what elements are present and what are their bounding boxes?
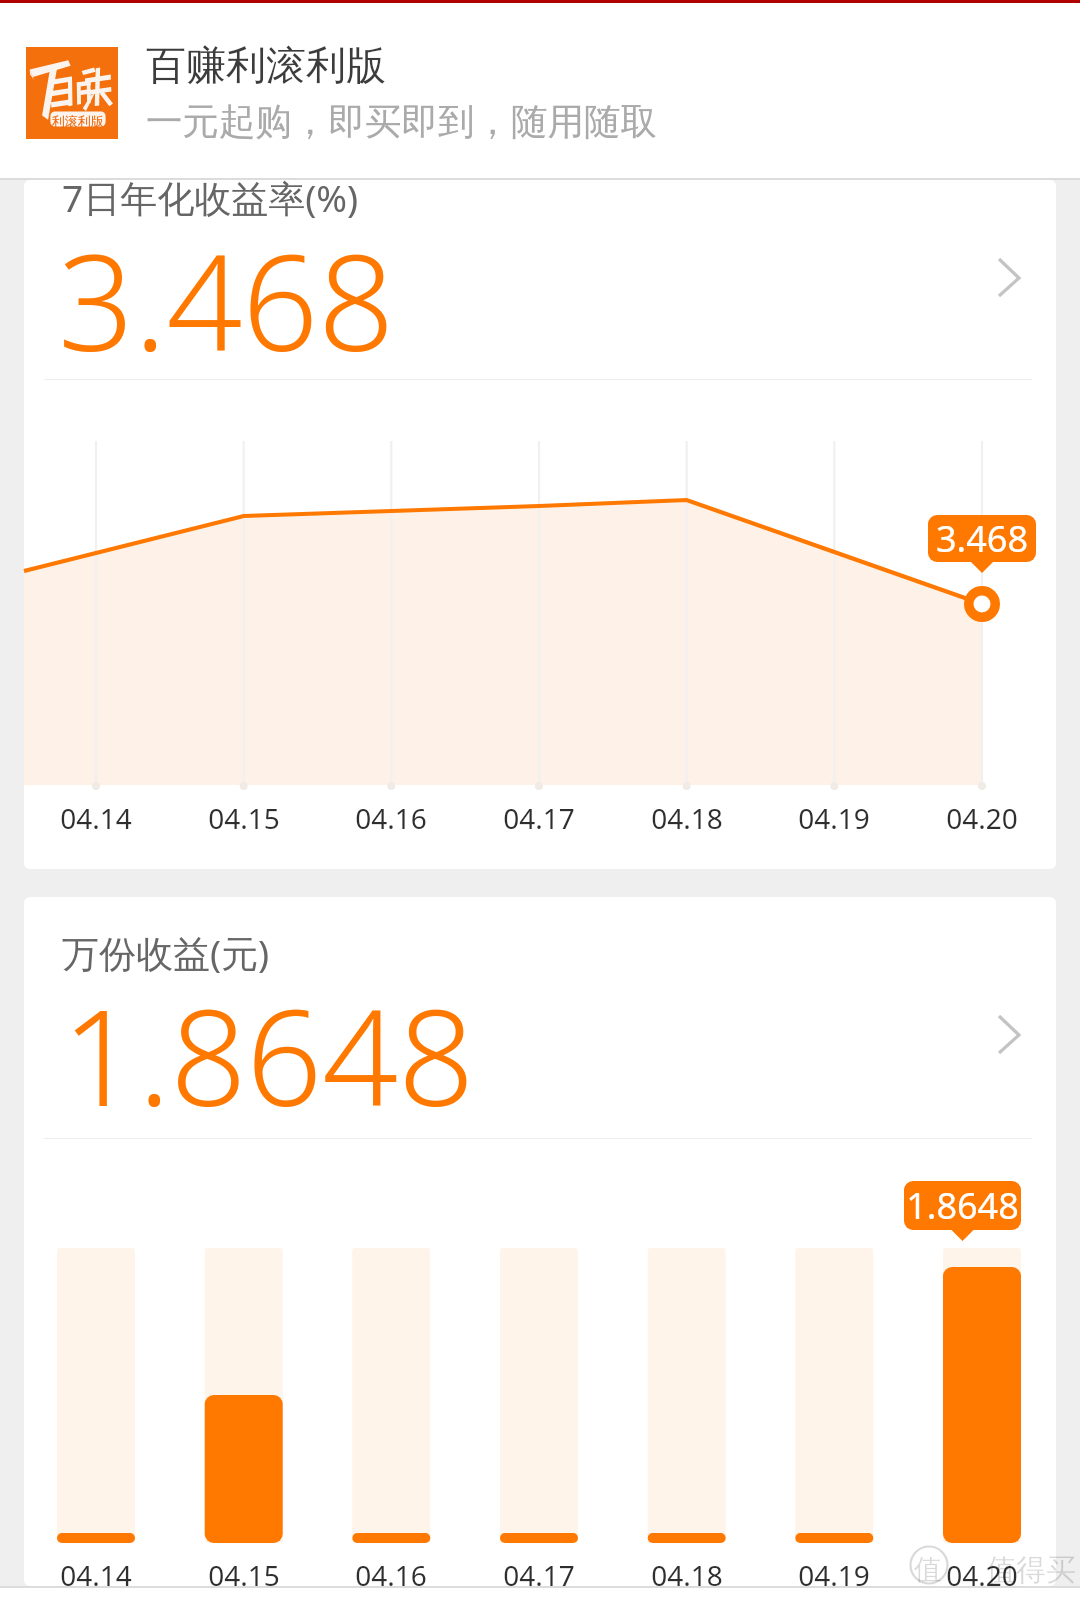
button[interactable]: 详情: [973, 248, 1043, 318]
staticText: 1.8648: [62, 964, 475, 1145]
staticText: 04.15: [174, 1556, 314, 1594]
button[interactable]: 7日年化收益率(%): [24, 180, 1056, 379]
staticText: 值: [914, 1552, 942, 1587]
staticText: 利滚利版: [52, 113, 104, 129]
staticText: 04.18: [617, 1556, 757, 1594]
button[interactable]: 利滚利版: [0, 3, 1080, 180]
button[interactable]: 详情: [973, 1005, 1043, 1075]
staticText: 04.15: [174, 799, 314, 837]
staticText: 3.468: [928, 514, 1036, 563]
staticText: 1.8648: [904, 1181, 1021, 1230]
staticText: 百赚利滚利版: [146, 40, 386, 90]
staticText: 04.14: [26, 799, 166, 837]
staticText: 04.16: [321, 1556, 461, 1594]
staticText: 万份收益(元): [62, 927, 270, 978]
staticText: 04.18: [617, 799, 757, 837]
staticText: 值得买: [986, 1551, 1076, 1589]
staticText: 04.20: [912, 799, 1052, 837]
staticText: 04.20: [912, 1556, 1052, 1594]
staticText: 一元起购，即买即到，随用随取: [146, 99, 657, 145]
staticText: 04.17: [469, 799, 609, 837]
staticText: 04.17: [469, 1556, 609, 1594]
staticText: 04.19: [764, 799, 904, 837]
staticText: 04.16: [321, 799, 461, 837]
staticText: 04.14: [26, 1556, 166, 1594]
staticText: 7日年化收益率(%): [62, 172, 359, 223]
button[interactable]: 万份收益(元): [24, 897, 1056, 1138]
staticText: 04.19: [764, 1556, 904, 1594]
staticText: 3.468: [58, 209, 395, 390]
